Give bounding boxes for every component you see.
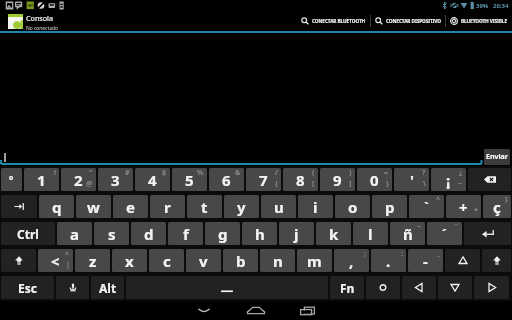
staticText: x bbox=[125, 251, 134, 271]
button[interactable]: backspace bbox=[468, 168, 511, 191]
staticText: d bbox=[144, 224, 154, 244]
button[interactable]: h bbox=[242, 222, 277, 245]
staticText: | bbox=[66, 260, 70, 270]
button[interactable]: Alt bbox=[91, 276, 124, 299]
staticText: e bbox=[126, 197, 135, 217]
staticText: # bbox=[125, 168, 130, 178]
button[interactable]: b bbox=[223, 249, 258, 272]
button[interactable]: . bbox=[371, 249, 406, 272]
button[interactable]: Back bbox=[184, 301, 224, 320]
button[interactable]: ` bbox=[409, 195, 444, 218]
button[interactable]: right bbox=[474, 276, 509, 299]
button[interactable]: enter bbox=[464, 222, 511, 245]
button[interactable]: tab bbox=[1, 195, 37, 218]
button[interactable]: ¡ bbox=[431, 168, 466, 191]
button[interactable]: 8 bbox=[283, 168, 318, 191]
button[interactable]: 0 bbox=[357, 168, 392, 191]
button[interactable]: - bbox=[408, 249, 443, 272]
button[interactable]: a bbox=[57, 222, 92, 245]
button[interactable]: 2 bbox=[61, 168, 96, 191]
button[interactable]: n bbox=[260, 249, 295, 272]
staticText: ) bbox=[349, 168, 352, 178]
button[interactable]: º bbox=[1, 168, 22, 191]
staticText: r bbox=[164, 197, 171, 217]
button[interactable]: l bbox=[353, 222, 388, 245]
staticText: c bbox=[163, 251, 171, 271]
button[interactable]: Enviar bbox=[484, 149, 510, 165]
button[interactable]: z bbox=[75, 249, 110, 272]
button[interactable]: w bbox=[76, 195, 111, 218]
button[interactable]: mic bbox=[56, 276, 89, 299]
button[interactable]: q bbox=[39, 195, 74, 218]
button[interactable]: s bbox=[94, 222, 129, 245]
button[interactable]: CONECTAR BLUETOOTH bbox=[297, 11, 370, 31]
button[interactable]: x bbox=[112, 249, 147, 272]
button[interactable]: p bbox=[372, 195, 407, 218]
staticText: Enviar bbox=[486, 152, 508, 162]
staticText: 2 bbox=[74, 170, 83, 190]
staticText: ¨ bbox=[454, 222, 459, 232]
button[interactable]: shift bbox=[482, 249, 511, 272]
button[interactable]: v bbox=[186, 249, 221, 272]
staticText: Consola bbox=[26, 13, 54, 23]
button[interactable]: < bbox=[38, 249, 73, 272]
button[interactable]: ' bbox=[394, 168, 429, 191]
button[interactable]: space bbox=[126, 276, 328, 299]
button[interactable]: left bbox=[402, 276, 436, 299]
button[interactable]: r bbox=[150, 195, 185, 218]
staticText: - bbox=[423, 251, 428, 271]
button[interactable]: k bbox=[316, 222, 351, 245]
button[interactable]: 4 bbox=[135, 168, 170, 191]
button[interactable]: BLUETOOTH VISIBLE bbox=[446, 11, 511, 31]
button[interactable]: Fn bbox=[330, 276, 364, 299]
button[interactable]: c bbox=[149, 249, 184, 272]
button[interactable]: 3 bbox=[98, 168, 133, 191]
staticText: s bbox=[108, 224, 116, 244]
button[interactable]: + bbox=[446, 195, 481, 218]
button[interactable]: y bbox=[224, 195, 259, 218]
staticText: _ bbox=[437, 249, 440, 259]
button[interactable]: up bbox=[445, 249, 480, 272]
button[interactable]: shift bbox=[1, 249, 36, 272]
staticText: 39% bbox=[476, 2, 489, 10]
staticText: ] bbox=[349, 179, 352, 189]
button[interactable]: down bbox=[438, 276, 472, 299]
button[interactable]: Ctrl bbox=[1, 222, 55, 245]
staticText: { bbox=[275, 179, 278, 189]
button[interactable]: Recents bbox=[288, 301, 328, 320]
button[interactable]: d bbox=[131, 222, 166, 245]
staticText: 5 bbox=[185, 170, 194, 190]
button[interactable]: 6 bbox=[209, 168, 244, 191]
button[interactable]: f bbox=[168, 222, 203, 245]
staticText: h bbox=[255, 224, 265, 244]
button[interactable]: j bbox=[279, 222, 314, 245]
staticText: i bbox=[313, 197, 318, 217]
button[interactable]: Home bbox=[236, 301, 276, 320]
staticText: ~ bbox=[458, 179, 463, 189]
button[interactable]: g bbox=[205, 222, 240, 245]
staticText: Fn bbox=[340, 280, 355, 296]
button[interactable]: Esc bbox=[1, 276, 54, 299]
staticText: , bbox=[349, 251, 354, 271]
button[interactable]: i bbox=[298, 195, 333, 218]
button[interactable]: ´ bbox=[427, 222, 462, 245]
button[interactable]: e bbox=[113, 195, 148, 218]
button[interactable]: o bbox=[335, 195, 370, 218]
button[interactable]: CONECTAR DISPOSITIVO bbox=[371, 11, 445, 31]
staticText: l bbox=[368, 224, 373, 244]
button[interactable]: ç bbox=[483, 195, 511, 218]
button[interactable]: t bbox=[187, 195, 222, 218]
staticText: Alt bbox=[99, 280, 117, 296]
button[interactable]: 7 bbox=[246, 168, 281, 191]
button[interactable]: ñ bbox=[390, 222, 425, 245]
button[interactable]: 1 bbox=[24, 168, 59, 191]
staticText: < bbox=[51, 251, 60, 271]
button[interactable]: circle bbox=[366, 276, 400, 299]
staticText: " bbox=[89, 168, 93, 178]
staticText: ( bbox=[312, 168, 315, 178]
button[interactable]: 9 bbox=[320, 168, 355, 191]
button[interactable]: u bbox=[261, 195, 296, 218]
button[interactable]: , bbox=[334, 249, 369, 272]
button[interactable]: m bbox=[297, 249, 332, 272]
button[interactable]: 5 bbox=[172, 168, 207, 191]
